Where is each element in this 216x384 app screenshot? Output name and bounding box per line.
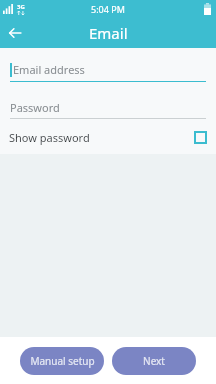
- button[interactable]: Show password: [0, 126, 216, 148]
- staticText: Email: [89, 23, 128, 43]
- button[interactable]: Password: [10, 96, 206, 118]
- staticText: 3G: [17, 3, 25, 11]
- button[interactable]: Manual setup: [20, 347, 104, 375]
- staticText: Email address: [13, 62, 85, 77]
- staticText: 5:04 PM: [91, 3, 125, 15]
- button[interactable]: Back: [0, 18, 30, 48]
- button[interactable]: Email address: [10, 57, 206, 81]
- staticText: Manual setup: [30, 354, 95, 368]
- staticText: Next: [143, 354, 165, 368]
- button[interactable]: Next: [112, 347, 196, 375]
- staticText: Password: [10, 100, 60, 115]
- staticText: Show password: [9, 130, 90, 145]
